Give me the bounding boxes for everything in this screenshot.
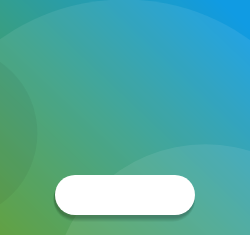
button[interactable]: Get started <box>55 175 195 215</box>
